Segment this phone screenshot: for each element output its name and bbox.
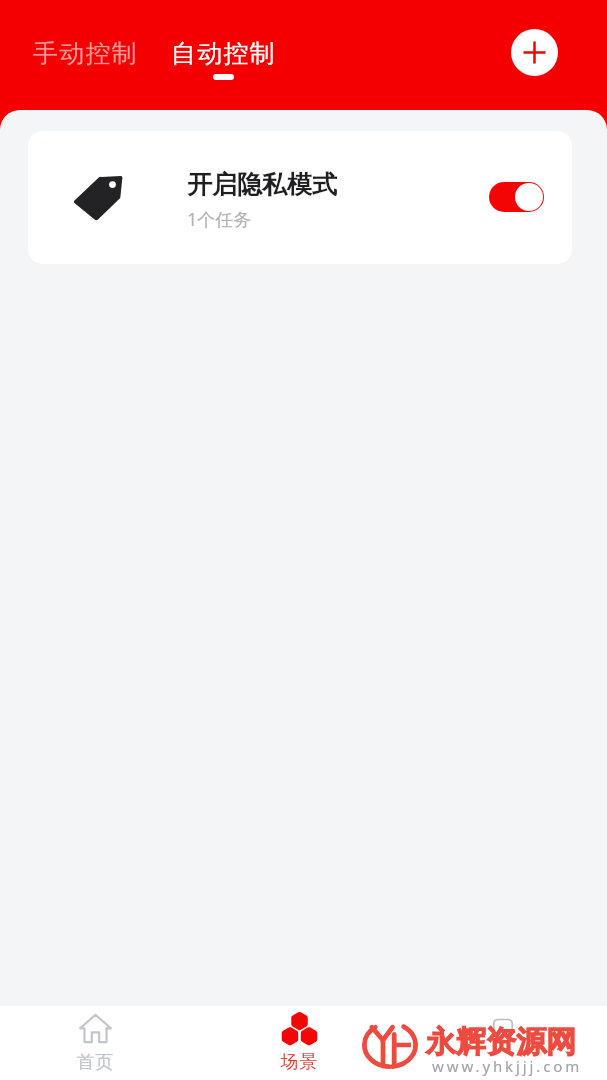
button[interactable]: 开启隐私模式 [28,131,572,264]
staticText: 自动控制 [171,38,276,69]
staticText: 手动控制 [33,38,138,69]
staticText: 1个任务 [187,207,252,232]
button[interactable]: Toggle privacy mode [489,182,544,212]
staticText: www.yhkjjj.com [432,1056,583,1076]
button[interactable]: 自动控制 [157,28,290,90]
staticText: 场景 [280,1051,318,1074]
button[interactable]: 场景 [265,1006,333,1080]
button[interactable]: 手动控制 [19,28,152,79]
button[interactable]: 首页 [61,1006,129,1080]
button[interactable]: Add automation [511,29,558,76]
button[interactable]: Profile [478,1013,533,1073]
staticText: 首页 [76,1051,114,1074]
staticText: 永辉资源网 [426,1023,576,1061]
staticText: 开启隐私模式 [187,169,337,200]
